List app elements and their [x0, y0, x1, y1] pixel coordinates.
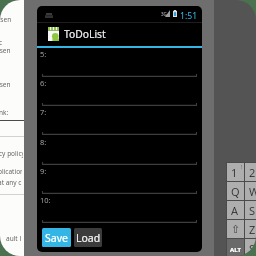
staticText: nk: [0, 108, 9, 117]
staticText: tsen [0, 15, 12, 24]
staticText: ToDoList [64, 27, 106, 41]
button[interactable]: ⇧ [227, 220, 244, 238]
staticText: 6: [40, 78, 47, 88]
staticText: cy policy [0, 149, 23, 158]
button[interactable]: Z [245, 220, 256, 238]
staticText: ault l [6, 234, 22, 243]
button[interactable]: S [245, 239, 256, 256]
button[interactable]: 2 [245, 163, 256, 181]
staticText: isen [0, 80, 11, 89]
staticText: W [249, 184, 256, 199]
staticText: 1:51 [180, 10, 198, 22]
staticText: Z [249, 222, 256, 237]
button[interactable]: 5: [37, 48, 202, 77]
staticText: S [249, 241, 256, 256]
staticText: S [249, 203, 256, 218]
staticText: 5: [40, 49, 47, 59]
staticText: 7: [40, 107, 47, 117]
staticText: c [0, 38, 3, 47]
staticText: plication [0, 167, 22, 176]
button[interactable]: 9: [37, 165, 202, 194]
staticText: ! [241, 164, 243, 171]
staticText: at any c [0, 178, 22, 187]
button[interactable]: ALT [227, 239, 244, 256]
staticText: 9: [40, 166, 47, 176]
staticText: 3G [161, 11, 167, 17]
staticText: isen [0, 46, 11, 55]
button[interactable]: Q [227, 182, 244, 200]
staticText: ⇧ [231, 223, 241, 236]
button[interactable]: S [245, 201, 256, 219]
staticText: 8: [40, 137, 47, 147]
staticText: 1 [231, 165, 238, 180]
button[interactable]: 1 [227, 163, 244, 181]
staticText: 10: [40, 195, 51, 205]
staticText: ALT [230, 246, 241, 254]
staticText: 2 [249, 165, 256, 180]
button[interactable]: 6: [37, 77, 202, 106]
button[interactable]: Load [74, 228, 102, 247]
button[interactable]: 8: [37, 136, 202, 165]
button[interactable]: W [245, 182, 256, 200]
button[interactable]: A [227, 201, 244, 219]
button[interactable]: 7: [37, 106, 202, 135]
other: App icon [48, 27, 59, 41]
button[interactable]: Save [42, 228, 71, 247]
staticText: Load [76, 231, 101, 245]
button[interactable]: 10: [37, 194, 202, 223]
staticText: Save [45, 231, 68, 245]
staticText: Q [231, 184, 240, 199]
staticText: A [231, 203, 239, 218]
